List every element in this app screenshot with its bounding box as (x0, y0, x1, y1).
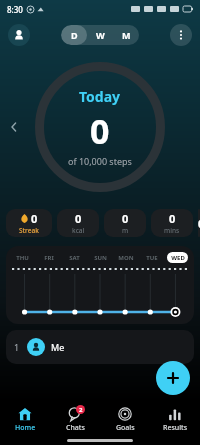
button[interactable]: Profile (8, 24, 30, 46)
staticText: THU (16, 254, 29, 262)
button[interactable]: 0 (198, 209, 200, 237)
button[interactable]: Previous day (6, 119, 22, 135)
staticText: Chats (66, 423, 85, 433)
button[interactable]: 0 (104, 209, 146, 237)
staticText: Today (79, 87, 121, 106)
staticText: Streak (19, 226, 39, 235)
staticText: TUE (146, 254, 158, 262)
staticText: M (122, 29, 131, 41)
staticText: 0 (198, 216, 200, 231)
button[interactable]: M (113, 25, 139, 45)
staticText: D (71, 29, 78, 41)
staticText: 1 (14, 341, 20, 353)
staticText: 0 (169, 211, 176, 226)
button[interactable]: 1 (6, 330, 194, 364)
button[interactable]: 0 (6, 209, 52, 237)
staticText: 0 (31, 211, 38, 226)
staticText: Results (163, 423, 188, 433)
button[interactable]: 2 (50, 405, 100, 435)
staticText: FRI (44, 254, 54, 262)
staticText: kcal (72, 226, 85, 235)
staticText: MON (118, 254, 134, 262)
staticText: SAT (69, 254, 80, 262)
button[interactable]: 0 (57, 209, 99, 237)
button[interactable]: 0 (151, 209, 193, 237)
staticText: SUN (94, 254, 107, 262)
staticText: m (122, 226, 129, 235)
staticText: 0 (75, 211, 82, 226)
staticText: WED (171, 254, 185, 262)
staticText: Goals (116, 423, 135, 433)
button[interactable]: Home (0, 405, 50, 435)
button[interactable]: Goals (100, 405, 150, 435)
button[interactable]: W (87, 25, 113, 45)
staticText: 2 (79, 406, 83, 414)
button[interactable]: Results (150, 405, 200, 435)
staticText: Me (51, 341, 65, 353)
button[interactable]: D (61, 25, 87, 45)
button[interactable]: Add (156, 361, 190, 395)
staticText: mins (164, 226, 180, 235)
staticText: W (96, 29, 105, 41)
staticText: 0 (90, 108, 110, 154)
staticText: of 10,000 steps (68, 155, 132, 167)
button[interactable]: More options (170, 24, 192, 46)
staticText: 0 (122, 211, 129, 226)
staticText: 8:30 (7, 4, 23, 15)
button[interactable]: THU (6, 246, 194, 324)
staticText: Home (15, 423, 36, 433)
